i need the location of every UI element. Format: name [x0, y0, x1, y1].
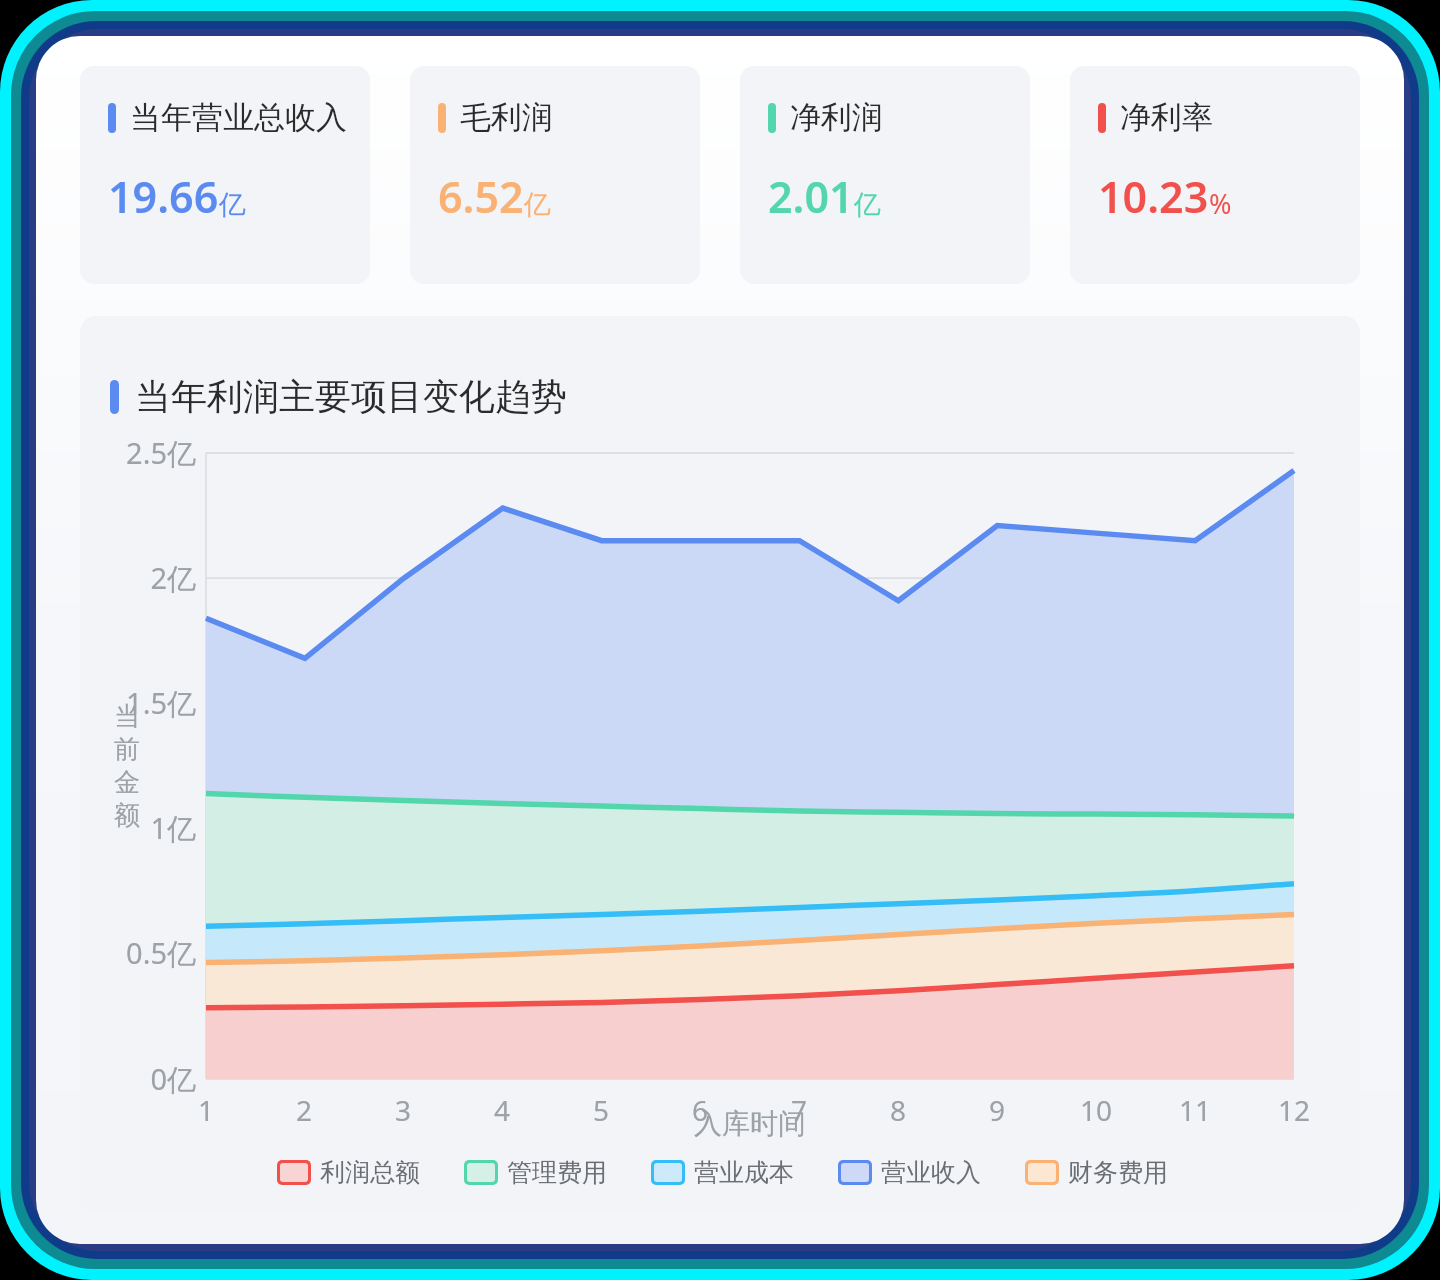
staticText: 额 [114, 799, 140, 832]
staticText: 净利润 [790, 98, 883, 137]
staticText: 当年利润主要项目变化趋势 [135, 374, 567, 419]
staticText: 10 [1080, 1091, 1113, 1129]
staticText: 2.5亿 [112, 433, 196, 473]
staticText: 7 [791, 1091, 808, 1129]
staticText: 净利率 [1120, 98, 1213, 137]
staticText: 管理费用 [507, 1157, 607, 1188]
staticText: 6.52 [438, 167, 524, 226]
staticText: 亿 [524, 188, 551, 222]
staticText: 6 [692, 1091, 709, 1129]
button[interactable]: 净利润 [740, 66, 1030, 284]
staticText: 2.01 [768, 167, 854, 226]
staticText: 0.5亿 [112, 933, 196, 973]
staticText: 前 [114, 733, 140, 766]
staticText: 12 [1278, 1091, 1311, 1129]
staticText: 19.66 [108, 167, 219, 226]
staticText: 亿 [854, 188, 881, 222]
button[interactable]: 利润总额 [273, 1153, 424, 1192]
staticText: 2亿 [112, 558, 196, 598]
staticText: 财务费用 [1068, 1157, 1168, 1188]
button[interactable]: 当年利润主要项目变化趋势 [80, 316, 1360, 1214]
staticText: 4 [494, 1091, 511, 1129]
staticText: 5 [593, 1091, 610, 1129]
button[interactable]: 当年营业总收入 [80, 66, 370, 284]
staticText: 1亿 [112, 808, 196, 848]
staticText: 11 [1179, 1091, 1212, 1129]
staticText: 8 [890, 1091, 907, 1129]
staticText: 当 [114, 700, 140, 733]
staticText: 9 [989, 1091, 1006, 1129]
button[interactable]: 财务费用 [1021, 1153, 1172, 1192]
button[interactable]: 营业收入 [834, 1153, 985, 1192]
staticText: 营业成本 [694, 1157, 794, 1188]
staticText: 0亿 [112, 1059, 196, 1099]
button[interactable]: 管理费用 [460, 1153, 611, 1192]
staticText: 2 [296, 1091, 313, 1129]
staticText: 毛利润 [460, 98, 553, 137]
staticText: 金 [114, 766, 140, 799]
button[interactable]: 毛利润 [410, 66, 700, 284]
staticText: 利润总额 [320, 1157, 420, 1188]
button[interactable]: 净利率 [1070, 66, 1360, 284]
staticText: 入库时间 [694, 1106, 806, 1141]
staticText: 10.23 [1098, 167, 1209, 226]
staticText: 1 [198, 1091, 215, 1129]
staticText: 营业收入 [881, 1157, 981, 1188]
button[interactable]: 营业成本 [647, 1153, 798, 1192]
staticText: 3 [395, 1091, 412, 1129]
staticText: % [1209, 185, 1232, 222]
staticText: 当年营业总收入 [130, 98, 347, 137]
staticText: 亿 [219, 188, 246, 222]
staticText: 1.5亿 [112, 683, 196, 723]
